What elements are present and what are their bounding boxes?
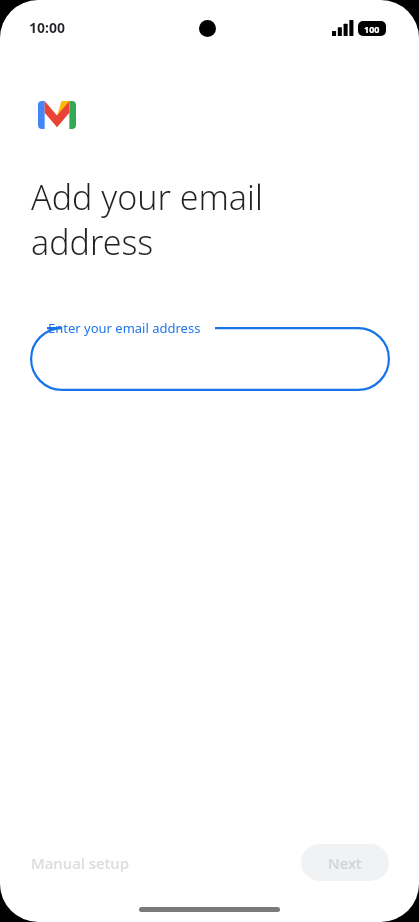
staticText: Next [328, 853, 362, 873]
button[interactable]: Manual setup [18, 846, 117, 880]
button[interactable]: Enter your email address [30, 327, 390, 391]
staticText: 10:00 [29, 18, 65, 37]
staticText: Enter your email address [48, 319, 201, 337]
button[interactable]: Next [301, 844, 389, 881]
staticText: Manual setup [31, 853, 130, 873]
staticText: Add your email address [31, 174, 371, 264]
staticText: 100 [364, 23, 380, 35]
